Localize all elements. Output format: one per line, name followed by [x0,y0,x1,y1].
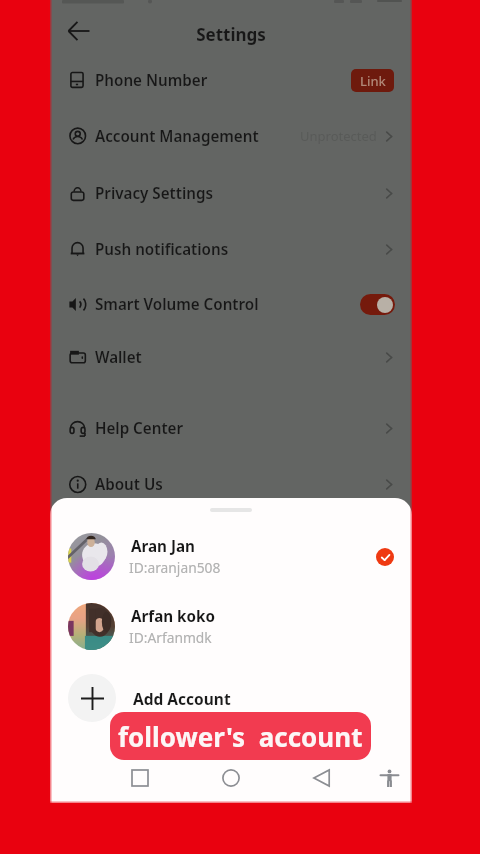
staticText: Privacy Settings [95,183,213,204]
button[interactable]: Accessibility [372,761,406,795]
button[interactable]: follower's account [110,712,371,760]
staticText: follower's account [118,719,363,754]
staticText: Smart Volume Control [95,294,259,315]
button[interactable]: Link [351,69,394,92]
button[interactable]: Home [211,758,251,798]
button[interactable]: Add Account [50,670,412,726]
button[interactable]: Recents [120,758,160,798]
button[interactable]: Aran Jan [50,528,412,584]
button[interactable]: Arfan koko [50,598,412,654]
button[interactable]: Phone Number [50,52,412,108]
staticText: ID:aranjan508 [129,558,221,577]
staticText: Help Center [95,418,184,439]
staticText: ID:Arfanmdk [129,628,212,647]
staticText: About Us [95,474,163,495]
staticText: Wallet [95,347,142,368]
button[interactable]: Smart Volume Control [50,276,412,332]
button[interactable]: Smart Volume Control toggle [360,294,395,315]
button[interactable]: Back [302,758,342,798]
staticText: Unprotected [300,127,377,145]
staticText: Add Account [133,688,231,709]
staticText: Phone Number [95,70,208,91]
staticText: Settings [50,23,412,46]
button[interactable]: About Us [50,456,412,512]
button[interactable]: Account Management [50,108,412,164]
button[interactable]: Push notifications [50,221,412,277]
staticText: Push notifications [95,239,229,260]
staticText: Aran Jan [131,536,195,557]
button[interactable]: Help Center [50,400,412,456]
staticText: Link [360,72,386,90]
staticText: Arfan koko [131,606,215,627]
staticText: Account Management [95,126,259,147]
button[interactable]: Wallet [50,329,412,385]
button[interactable]: Back [59,11,99,51]
button[interactable]: Privacy Settings [50,165,412,221]
